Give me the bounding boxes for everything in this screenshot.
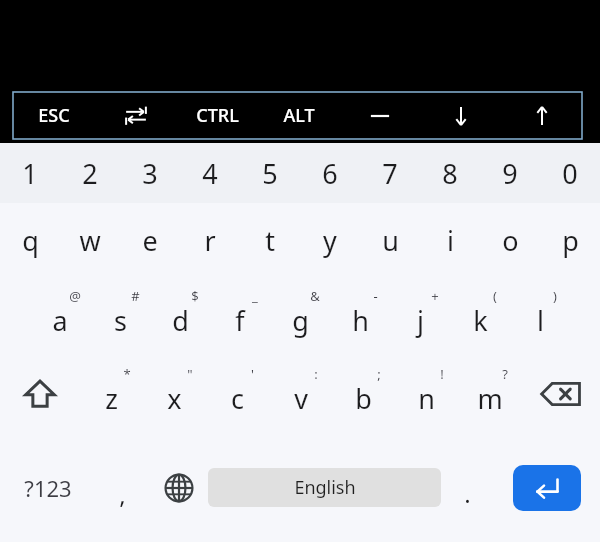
staticText: f	[235, 302, 245, 339]
button[interactable]: c	[206, 355, 269, 433]
button[interactable]: r	[180, 203, 240, 277]
button[interactable]: Change language	[149, 433, 208, 542]
button[interactable]: n	[395, 355, 458, 433]
staticText: 4	[202, 155, 218, 192]
staticText: h	[352, 302, 369, 339]
button[interactable]: b	[332, 355, 395, 433]
button[interactable]: f	[210, 277, 270, 355]
staticText: )	[553, 287, 557, 305]
staticText: '	[251, 365, 254, 383]
staticText: i	[447, 222, 454, 259]
button[interactable]: 9	[480, 143, 540, 203]
staticText: t	[265, 222, 275, 259]
button[interactable]: w	[60, 203, 120, 277]
button[interactable]: Shift	[0, 355, 80, 433]
staticText: b	[355, 380, 372, 417]
staticText: ?123	[24, 473, 72, 503]
button[interactable]: z	[80, 355, 143, 433]
button[interactable]: ?123	[0, 433, 96, 542]
staticText: 5	[262, 155, 278, 192]
button[interactable]: m	[458, 355, 521, 433]
button[interactable]: 3	[120, 143, 180, 203]
button[interactable]: i	[420, 203, 480, 277]
button[interactable]: Backspace	[521, 355, 600, 433]
button[interactable]: t	[240, 203, 300, 277]
button[interactable]: 7	[360, 143, 420, 203]
staticText: l	[537, 302, 544, 339]
staticText: "	[187, 365, 193, 383]
staticText: ,	[119, 478, 126, 511]
staticText: w	[79, 222, 101, 259]
button[interactable]: x	[143, 355, 206, 433]
button[interactable]: s	[90, 277, 150, 355]
staticText: 3	[142, 155, 158, 192]
staticText: r	[204, 222, 216, 259]
button[interactable]: v	[269, 355, 332, 433]
staticText: z	[105, 380, 118, 417]
staticText: ?	[502, 365, 508, 383]
button[interactable]: .	[441, 433, 494, 542]
staticText: 6	[322, 155, 338, 192]
staticText: v	[294, 380, 308, 417]
button[interactable]: ,	[96, 433, 149, 542]
staticText: $	[191, 287, 199, 305]
button[interactable]: ALT	[258, 92, 339, 139]
staticText: :	[314, 365, 318, 383]
button[interactable]: j	[390, 277, 450, 355]
button[interactable]: 0	[540, 143, 600, 203]
button[interactable]: 5	[240, 143, 300, 203]
button[interactable]: 6	[300, 143, 360, 203]
button[interactable]: English	[208, 468, 441, 507]
button[interactable]: u	[360, 203, 420, 277]
staticText: 8	[442, 155, 458, 192]
staticText: e	[142, 222, 158, 259]
staticText: 7	[382, 155, 398, 192]
staticText: .	[464, 477, 471, 510]
staticText: +	[431, 287, 439, 305]
staticText: 1	[22, 155, 38, 192]
button[interactable]: Arrow up	[501, 92, 582, 139]
button[interactable]: 1	[0, 143, 60, 203]
button[interactable]: Enter	[513, 465, 581, 511]
staticText: ;	[377, 365, 381, 383]
button[interactable]: Tab	[95, 92, 177, 139]
staticText: &	[310, 287, 320, 305]
button[interactable]: o	[480, 203, 540, 277]
button[interactable]: l	[510, 277, 570, 355]
staticText: _	[252, 287, 258, 305]
button[interactable]: e	[120, 203, 180, 277]
button[interactable]: y	[300, 203, 360, 277]
staticText: *	[123, 365, 131, 383]
button[interactable]: h	[330, 277, 390, 355]
button[interactable]: g	[270, 277, 330, 355]
button[interactable]: a	[30, 277, 90, 355]
button[interactable]: 2	[60, 143, 120, 203]
staticText: k	[473, 302, 488, 339]
button[interactable]: ESC	[13, 92, 95, 139]
button[interactable]: p	[540, 203, 600, 277]
button[interactable]: 4	[180, 143, 240, 203]
staticText: m	[477, 380, 503, 417]
staticText: a	[52, 302, 68, 339]
button[interactable]: k	[450, 277, 510, 355]
staticText: 9	[502, 155, 518, 192]
button[interactable]: Minus	[339, 92, 420, 139]
button[interactable]: Arrow down	[420, 92, 501, 139]
staticText: q	[22, 222, 39, 259]
button[interactable]: q	[0, 203, 60, 277]
staticText: -	[373, 287, 378, 305]
staticText: d	[172, 302, 189, 339]
staticText: c	[231, 380, 244, 417]
staticText: ESC	[38, 103, 70, 128]
button[interactable]: 8	[420, 143, 480, 203]
staticText: n	[418, 380, 435, 417]
staticText: y	[323, 222, 337, 259]
staticText: g	[292, 302, 309, 339]
staticText: u	[382, 222, 399, 259]
staticText: #	[131, 287, 140, 305]
staticText: 2	[82, 155, 98, 192]
button[interactable]: CTRL	[177, 92, 258, 139]
staticText: 0	[562, 155, 578, 192]
button[interactable]: d	[150, 277, 210, 355]
staticText: x	[167, 380, 182, 417]
